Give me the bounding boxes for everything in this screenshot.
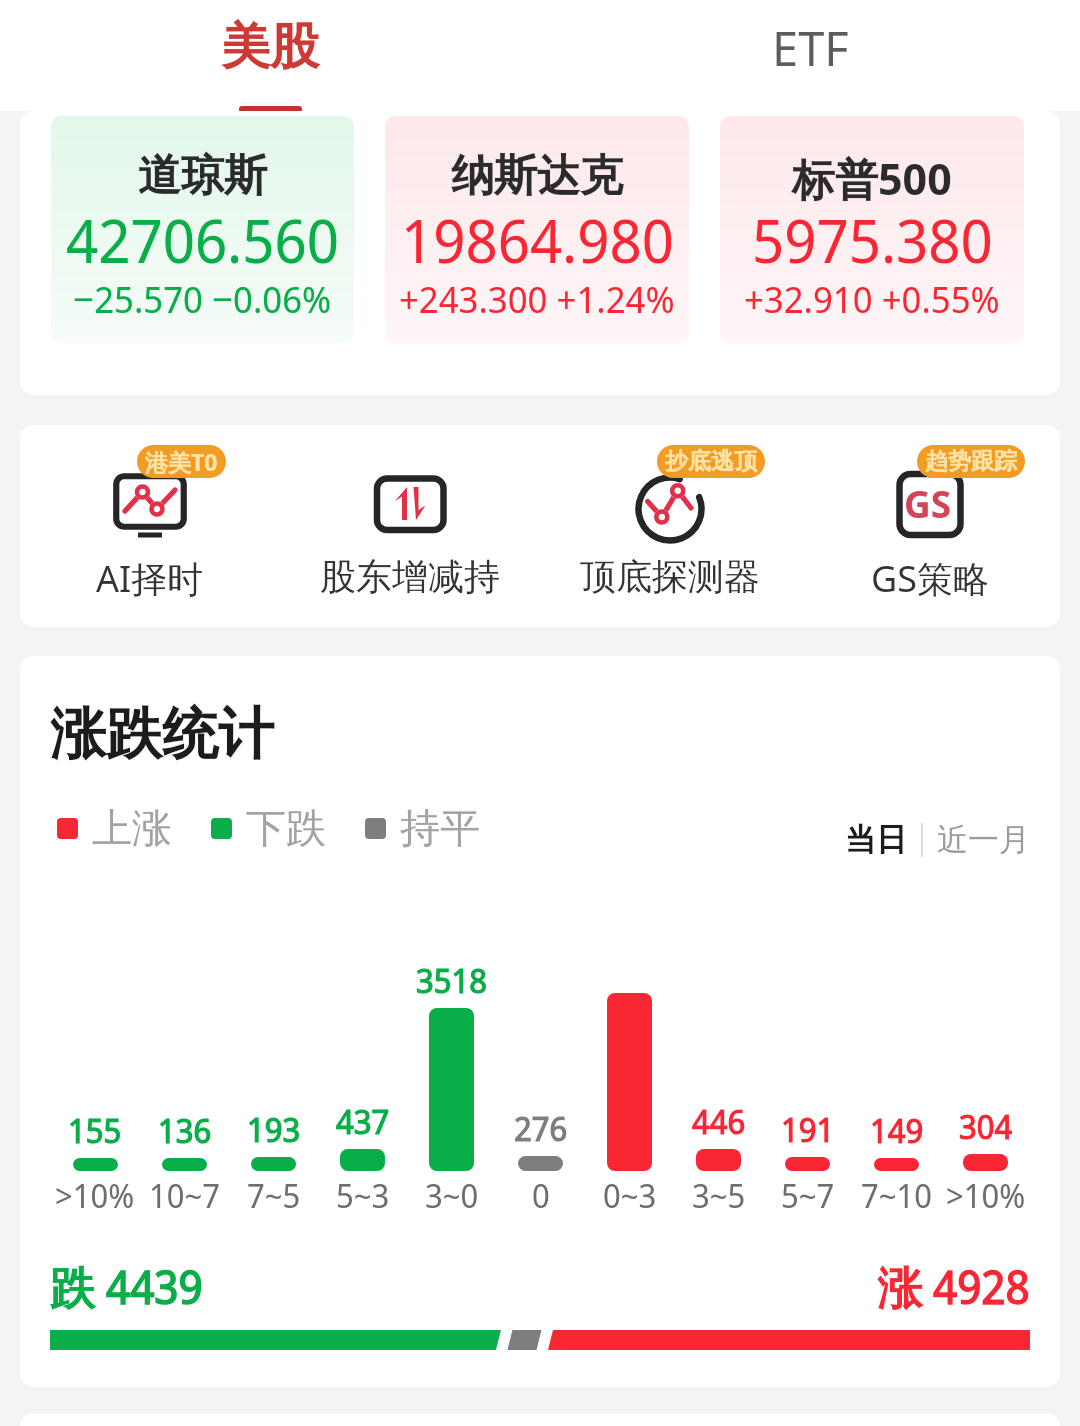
- button[interactable]: 下跌: [211, 803, 326, 853]
- staticText: 149: [870, 1108, 924, 1153]
- staticText: 155: [68, 1108, 122, 1153]
- staticText: 437: [336, 1099, 390, 1144]
- staticText: 136: [158, 1108, 212, 1153]
- staticText: 3~5: [692, 1173, 746, 1218]
- staticText: AI择时: [96, 554, 204, 603]
- staticText: 道琼斯: [138, 149, 267, 203]
- button[interactable]: 顶底探测器: [555, 425, 785, 599]
- staticText: 191: [781, 1107, 835, 1152]
- staticText: 纳斯达克: [451, 149, 623, 203]
- staticText: −25.570 −0.06%: [73, 273, 332, 323]
- button[interactable]: AI择时: [35, 425, 265, 603]
- staticText: 标普500: [792, 149, 952, 208]
- staticText: GS: [904, 478, 952, 528]
- staticText: >10%: [946, 1173, 1026, 1218]
- staticText: 42706.560: [66, 199, 339, 281]
- button[interactable]: 当日: [845, 820, 907, 859]
- staticText: ETF: [772, 16, 849, 80]
- staticText: 0~3: [603, 1173, 657, 1218]
- button[interactable]: 标普500: [720, 116, 1024, 343]
- button[interactable]: 上涨: [57, 803, 172, 853]
- other: GS策略: [887, 468, 973, 538]
- button[interactable]: 近一月: [937, 820, 1030, 859]
- staticText: 3518: [416, 958, 487, 1003]
- staticText: 股东增减持: [320, 554, 500, 599]
- staticText: 5~7: [781, 1173, 835, 1218]
- staticText: 304: [959, 1104, 1013, 1149]
- staticText: 10~7: [149, 1173, 220, 1218]
- staticText: 涨 4928: [877, 1256, 1030, 1317]
- staticText: >10%: [55, 1173, 135, 1218]
- staticText: 上涨: [92, 803, 172, 853]
- staticText: 涨跌统计: [50, 699, 274, 770]
- staticText: 5975.380: [752, 199, 993, 281]
- button[interactable]: 纳斯达克: [385, 116, 689, 343]
- staticText: 276: [514, 1106, 568, 1151]
- other: 顶底探测器: [627, 468, 713, 538]
- staticText: 0: [532, 1173, 550, 1218]
- staticText: 7~5: [247, 1173, 301, 1218]
- button[interactable]: 股东增减持: [295, 425, 525, 599]
- staticText: 7~10: [861, 1173, 932, 1218]
- staticText: 19864.980: [401, 199, 674, 281]
- button[interactable]: 道琼斯: [51, 116, 354, 343]
- staticText: 3~0: [425, 1173, 479, 1218]
- staticText: 下跌: [246, 803, 326, 853]
- staticText: GS策略: [871, 554, 989, 603]
- button[interactable]: ETF: [540, 0, 1080, 111]
- staticText: 趋势跟踪: [925, 447, 1017, 476]
- button[interactable]: GS策略: [815, 425, 1045, 603]
- staticText: 跌 4439: [50, 1256, 203, 1317]
- staticText: 193: [247, 1107, 301, 1152]
- staticText: +32.910 +0.55%: [744, 273, 1000, 323]
- staticText: +243.300 +1.24%: [399, 273, 675, 323]
- staticText: 446: [692, 1099, 746, 1144]
- other: 股东增减持: [367, 468, 453, 538]
- other: AI择时: [107, 468, 193, 538]
- staticText: 顶底探测器: [580, 554, 760, 599]
- button[interactable]: 持平: [365, 803, 480, 853]
- staticText: 港美T0: [145, 446, 218, 477]
- staticText: 美股: [221, 16, 319, 78]
- staticText: 抄底逃顶: [665, 447, 757, 476]
- staticText: 持平: [400, 803, 480, 853]
- button[interactable]: 美股: [0, 0, 540, 111]
- staticText: 5~3: [336, 1173, 390, 1218]
